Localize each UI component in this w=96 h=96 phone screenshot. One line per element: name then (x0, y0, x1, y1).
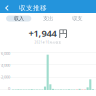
staticText: 0 (8, 86, 10, 91)
staticText: 4,000 (1, 62, 10, 68)
button[interactable]: Back (0, 3, 14, 13)
staticText: 2,000 (1, 74, 10, 79)
staticText: 支出 (43, 15, 53, 22)
staticText: 収入 (14, 15, 24, 22)
staticText: 収支推移 (19, 4, 47, 12)
button[interactable]: 収入 (4, 15, 33, 21)
staticText: +1,944 円 (28, 27, 67, 39)
staticText: 収支 (72, 15, 82, 22)
button[interactable]: 支出 (33, 15, 63, 21)
staticText: 2021年10月の収支 (34, 41, 61, 44)
button[interactable]: 収支 (63, 15, 92, 21)
staticText: 6,000 (1, 51, 10, 56)
